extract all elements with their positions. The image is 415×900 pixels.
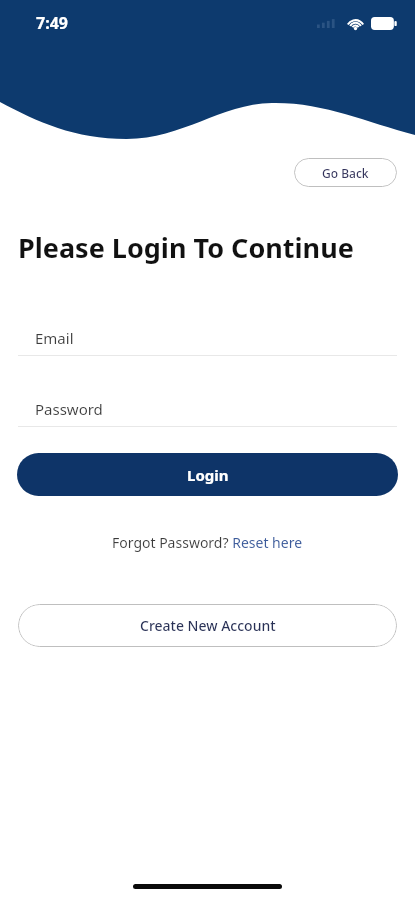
staticText: Please Login To Continue [18, 229, 354, 266]
staticText: Create New Account [140, 616, 276, 635]
staticText: Forgot Password? Reset here [112, 533, 303, 552]
button[interactable]: Forgot Password? Reset here [106, 529, 309, 556]
staticText: Password [35, 399, 103, 419]
staticText: Go Back [322, 165, 369, 181]
staticText: 7:49 [36, 12, 68, 34]
button[interactable]: Email [18, 321, 397, 355]
button[interactable]: Go Back [294, 158, 397, 187]
button[interactable]: Password [18, 392, 397, 426]
button[interactable]: Login [17, 453, 398, 496]
button[interactable]: Create New Account [18, 604, 397, 647]
staticText: Login [187, 465, 229, 485]
staticText: Email [35, 328, 74, 348]
